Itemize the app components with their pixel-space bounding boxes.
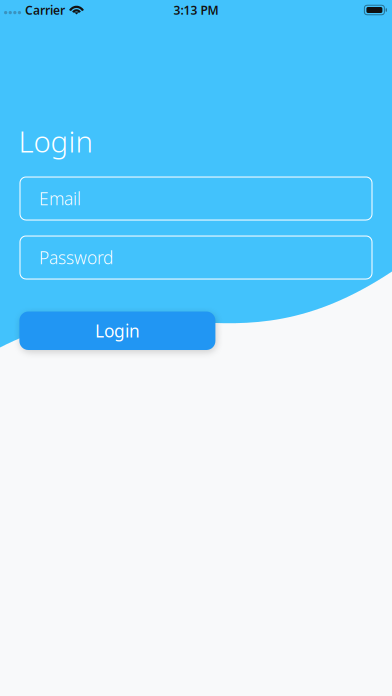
button[interactable]: Email <box>20 177 372 220</box>
button[interactable]: Login <box>19 311 215 350</box>
staticText: Carrier <box>25 2 65 18</box>
button[interactable]: Password <box>20 236 372 279</box>
staticText: Login <box>18 121 92 160</box>
staticText: Login <box>95 319 140 342</box>
staticText: Email <box>39 187 81 210</box>
staticText: Password <box>39 246 113 269</box>
staticText: 3:13 PM <box>173 2 218 18</box>
